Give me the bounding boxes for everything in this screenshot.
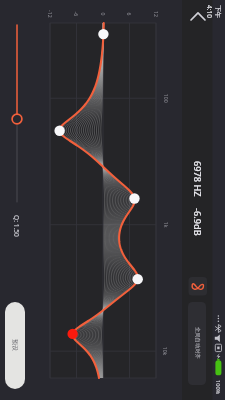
button[interactable]: Collapse panel [189,6,208,26]
button[interactable]: Headphone profile [188,277,207,296]
button[interactable]: Equalizer curve [50,23,156,378]
button[interactable]: Presets [5,302,25,389]
button[interactable]: Q factor slider [9,20,26,210]
button[interactable]: Auto alignment [188,302,206,385]
